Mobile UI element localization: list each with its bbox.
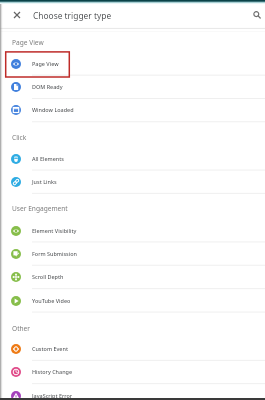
- staticText: JavaScript Error: [32, 392, 73, 399]
- staticText: Click: [12, 133, 27, 142]
- button[interactable]: Custom Event: [0, 337, 265, 360]
- staticText: User Engagement: [12, 204, 68, 213]
- button[interactable]: YouTube Video: [0, 289, 265, 312]
- staticText: Page View: [12, 38, 44, 47]
- button[interactable]: Close: [9, 7, 24, 22]
- staticText: Just Links: [32, 178, 57, 185]
- staticText: YouTube Video: [32, 297, 71, 304]
- button[interactable]: History Change: [0, 360, 265, 383]
- button[interactable]: Just Links: [0, 170, 265, 193]
- staticText: All Elements: [32, 155, 64, 162]
- staticText: Element Visibility: [32, 227, 77, 234]
- staticText: Window Loaded: [32, 106, 74, 113]
- button[interactable]: Page View: [0, 52, 265, 75]
- staticText: Other: [12, 324, 31, 333]
- button[interactable]: Form Submission: [0, 242, 265, 265]
- button[interactable]: Scroll Depth: [0, 265, 265, 288]
- staticText: Choose trigger type: [33, 10, 112, 21]
- staticText: DOM Ready: [32, 83, 63, 90]
- button[interactable]: JavaScript Error: [0, 384, 265, 400]
- button[interactable]: All Elements: [0, 147, 265, 170]
- staticText: Custom Event: [32, 345, 68, 352]
- staticText: Form Submission: [32, 250, 77, 257]
- staticText: History Change: [32, 368, 73, 375]
- button[interactable]: Window Loaded: [0, 98, 265, 121]
- button[interactable]: Search: [249, 7, 264, 22]
- button[interactable]: DOM Ready: [0, 75, 265, 98]
- button[interactable]: Element Visibility: [0, 219, 265, 242]
- staticText: Page View: [32, 60, 59, 67]
- staticText: Scroll Depth: [32, 273, 64, 280]
